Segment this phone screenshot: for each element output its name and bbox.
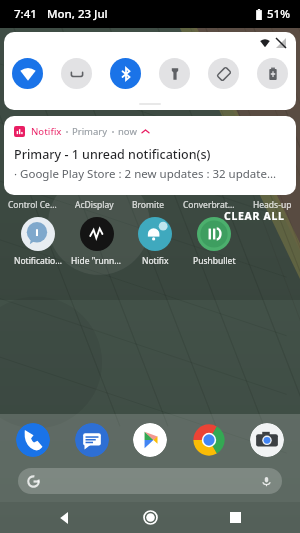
staticText: Mon, 23 Jul [47,6,108,22]
staticText: · Google Play Store : 2 new updates : 32… [14,166,277,182]
staticText: Hide "runni… [71,255,123,267]
button[interactable]: Notifix [129,217,181,267]
staticText: 51% [267,6,290,22]
button[interactable]: Play Store [133,423,167,457]
staticText: Primary - 1 unread notification(s) [14,146,211,163]
button[interactable]: Messages [75,423,109,457]
staticText: Primary [72,125,108,138]
staticText: Notifix [31,125,62,138]
button[interactable]: Phone [16,423,50,457]
staticText: Notificatio… [14,255,62,267]
button[interactable]: Bluetooth [110,58,141,89]
staticText: 7:41 [14,6,37,22]
button[interactable]: Notifix [4,116,296,195]
staticText: CLEAR ALL [224,209,285,223]
button[interactable]: Hide "runni… [71,217,123,267]
button[interactable]: Chrome [192,423,226,457]
button[interactable]: Back [45,502,85,533]
button[interactable]: Battery saver [257,58,288,89]
button[interactable] [18,468,282,494]
button[interactable]: Camera [250,423,284,457]
button[interactable]: Flashlight [159,58,190,89]
staticText: Bromite [132,199,165,211]
staticText: AcDisplay [75,199,114,211]
staticText: Control Ce… [8,199,57,211]
button[interactable]: CLEAR ALL [221,207,288,225]
button[interactable]: Notificatio… [12,217,64,267]
button[interactable]: Mobile data [61,58,92,89]
staticText: now [118,125,137,138]
staticText: Pushbullet [193,255,236,267]
staticText: Notifix [142,255,169,267]
staticText: Heads-up [253,199,292,211]
staticText: Converbrat… [183,199,235,211]
button[interactable]: Home [130,502,170,533]
button[interactable]: Auto rotate [208,58,239,89]
button[interactable]: Recent apps [215,502,255,533]
button[interactable]: Wi-Fi [12,58,43,89]
button[interactable]: Pushbullet [188,217,240,267]
